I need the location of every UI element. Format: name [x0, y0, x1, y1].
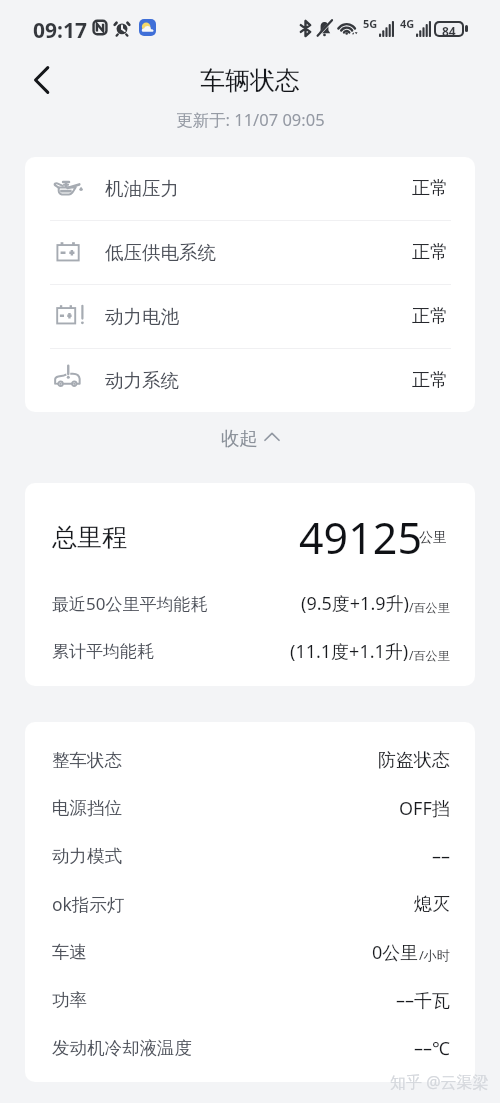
button[interactable]: 发动机冷却液温度	[52, 1024, 450, 1072]
staticText: /百公里	[409, 599, 450, 615]
button[interactable]: 最近50公里平均能耗	[52, 579, 450, 627]
button[interactable]: 动力模式	[52, 832, 450, 880]
staticText: 收起	[221, 427, 258, 450]
staticText: 电源挡位	[52, 797, 122, 819]
button[interactable]: 收起	[205, 419, 296, 458]
staticText: 49125	[299, 508, 422, 567]
staticText: /百公里	[409, 647, 450, 663]
staticText: OFF挡	[399, 796, 450, 821]
staticText: 更新于: 11/07 09:05	[176, 108, 325, 130]
staticText: 最近50公里平均能耗	[52, 592, 208, 615]
staticText: 总里程	[52, 522, 127, 553]
button[interactable]: 功率	[52, 976, 450, 1024]
staticText: 低压供电系统	[105, 241, 216, 264]
button[interactable]: 整车状态	[52, 736, 450, 784]
button[interactable]: 动力系统	[25, 349, 475, 412]
staticText: /小时	[419, 946, 450, 964]
staticText: ––	[432, 844, 450, 869]
staticText: 机油压力	[105, 177, 179, 200]
button[interactable]: Back	[20, 59, 62, 101]
staticText: 5G	[363, 16, 378, 31]
staticText: 公里	[419, 529, 447, 547]
staticText: 功率	[52, 989, 87, 1011]
button[interactable]: 累计平均能耗	[52, 627, 450, 675]
button[interactable]: 电源挡位	[52, 784, 450, 832]
button[interactable]: ok指示灯	[52, 880, 450, 928]
staticText: ––℃	[414, 1036, 450, 1061]
button[interactable]: 动力电池	[25, 285, 475, 349]
button[interactable]: 机油压力	[25, 157, 475, 221]
staticText: 车辆状态	[200, 65, 300, 96]
staticText: 车速	[52, 941, 87, 963]
staticText: 正常	[412, 305, 448, 328]
staticText: 09:17	[33, 16, 87, 45]
staticText: 84	[442, 23, 456, 35]
staticText: 0公里	[372, 940, 419, 965]
staticText: (11.1度+1.1升)	[290, 639, 409, 664]
staticText: 防盗状态	[378, 749, 450, 772]
staticText: ––千瓦	[396, 988, 450, 1013]
button[interactable]: 低压供电系统	[25, 221, 475, 285]
button[interactable]: 车速	[52, 928, 450, 976]
staticText: 整车状态	[52, 749, 122, 771]
staticText: 熄灭	[414, 893, 450, 916]
staticText: (9.5度+1.9升)	[301, 591, 409, 616]
staticText: 4G	[400, 16, 415, 31]
staticText: 正常	[412, 369, 448, 392]
staticText: 累计平均能耗	[52, 641, 154, 662]
staticText: 知乎 @云渠梁	[390, 1071, 489, 1093]
staticText: 动力电池	[105, 305, 179, 328]
staticText: 动力系统	[105, 369, 179, 392]
staticText: 正常	[412, 241, 448, 264]
staticText: ok指示灯	[52, 892, 125, 916]
staticText: 动力模式	[52, 845, 122, 867]
staticText: 正常	[412, 177, 448, 200]
staticText: 发动机冷却液温度	[52, 1037, 192, 1059]
